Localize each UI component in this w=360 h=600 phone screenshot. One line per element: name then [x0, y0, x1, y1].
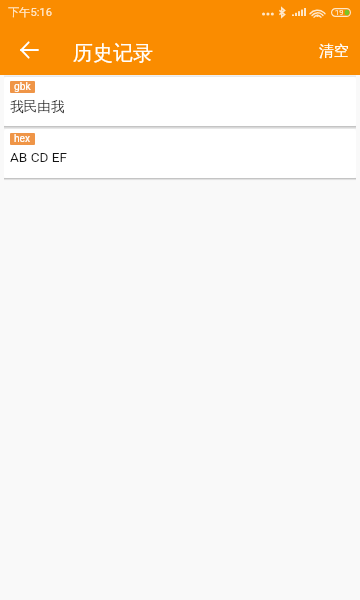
button[interactable]: 清空	[305, 28, 360, 71]
staticText: AB CD EF	[10, 149, 68, 165]
staticText: 清空	[319, 42, 349, 61]
button[interactable]: Back	[11, 31, 48, 68]
staticText: 我民由我	[10, 98, 65, 115]
staticText: 下午5:16	[8, 5, 52, 19]
button[interactable]: hex	[4, 129, 356, 178]
button[interactable]: gbk	[4, 77, 356, 126]
staticText: 19	[335, 8, 344, 17]
staticText: hex	[14, 133, 31, 145]
staticText: gbk	[14, 81, 31, 93]
staticText: 历史记录	[73, 41, 153, 66]
